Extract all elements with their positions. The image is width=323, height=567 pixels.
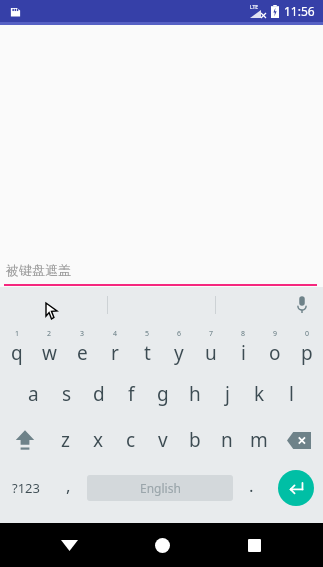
button[interactable] (0, 287, 107, 323)
staticText: 1 (15, 329, 20, 339)
staticText: d (93, 381, 105, 407)
button[interactable]: l (275, 371, 307, 417)
button[interactable]: 7 (195, 323, 227, 371)
staticText: 5 (145, 329, 150, 339)
button[interactable]: b (179, 417, 211, 463)
staticText: z (61, 427, 70, 453)
button[interactable]: Home (139, 523, 185, 567)
button[interactable]: 9 (259, 323, 291, 371)
staticText: g (157, 381, 169, 407)
staticText: p (301, 340, 313, 366)
button[interactable]: g (147, 371, 179, 417)
staticText: a (28, 381, 39, 407)
staticText: k (254, 381, 265, 407)
staticText: v (158, 427, 168, 453)
staticText: l (289, 381, 294, 407)
staticText: w (42, 340, 57, 366)
button[interactable]: 3 (66, 323, 99, 371)
staticText: . (249, 474, 254, 497)
staticText: h (189, 381, 201, 407)
staticText: 9 (273, 329, 278, 339)
button[interactable]: 1 (0, 323, 33, 371)
button[interactable]: f (115, 371, 147, 417)
staticText: j (225, 381, 230, 407)
staticText: o (269, 340, 281, 366)
button[interactable]: n (211, 417, 243, 463)
staticText: 6 (177, 329, 182, 339)
button[interactable]: Voice input (289, 292, 315, 318)
button[interactable]: English (87, 475, 233, 501)
staticText: n (221, 427, 233, 453)
staticText: x (93, 427, 104, 453)
button[interactable]: s (50, 371, 83, 417)
button[interactable]: m (243, 417, 275, 463)
button[interactable] (216, 287, 323, 323)
button[interactable]: Shift (0, 417, 49, 463)
button[interactable]: 被键盘遮盖 (0, 256, 323, 284)
button[interactable]: Back (46, 523, 92, 567)
staticText: u (205, 340, 217, 366)
staticText: , (66, 474, 71, 497)
staticText: c (126, 427, 136, 453)
button[interactable]: 4 (99, 323, 131, 371)
button[interactable]: Backspace (275, 417, 323, 463)
staticText: 11:56 (284, 3, 315, 19)
button[interactable]: a (17, 371, 50, 417)
button[interactable]: v (147, 417, 179, 463)
staticText: r (111, 340, 119, 366)
staticText: s (62, 381, 72, 407)
button[interactable]: . (235, 463, 268, 513)
staticText: 8 (241, 329, 246, 339)
staticText: 7 (209, 329, 214, 339)
button[interactable]: z (49, 417, 82, 463)
staticText: q (11, 340, 23, 366)
button[interactable]: 0 (291, 323, 323, 371)
button[interactable]: k (243, 371, 275, 417)
button[interactable]: 5 (131, 323, 163, 371)
button[interactable]: d (83, 371, 115, 417)
button[interactable]: x (82, 417, 115, 463)
staticText: 3 (80, 329, 85, 339)
staticText: 2 (47, 329, 52, 339)
staticText: 4 (113, 329, 118, 339)
staticText: LTE (250, 4, 259, 11)
button[interactable]: 6 (163, 323, 195, 371)
staticText: t (144, 340, 151, 366)
button[interactable]: , (52, 463, 85, 513)
staticText: f (128, 381, 135, 407)
button[interactable]: j (211, 371, 243, 417)
button[interactable]: c (115, 417, 147, 463)
button[interactable]: Recents (231, 523, 277, 567)
button[interactable]: h (179, 371, 211, 417)
button[interactable]: 8 (227, 323, 259, 371)
staticText: i (241, 340, 246, 366)
staticText: e (77, 340, 88, 366)
button[interactable]: ?123 (0, 463, 52, 513)
staticText: y (174, 340, 184, 366)
staticText: 0 (305, 329, 310, 339)
staticText: b (189, 427, 201, 453)
staticText: English (140, 480, 181, 496)
staticText: ?123 (12, 479, 40, 497)
button[interactable]: 2 (33, 323, 66, 371)
staticText: m (250, 427, 268, 453)
button[interactable]: Enter (278, 470, 314, 506)
staticText: 被键盘遮盖 (6, 262, 71, 278)
